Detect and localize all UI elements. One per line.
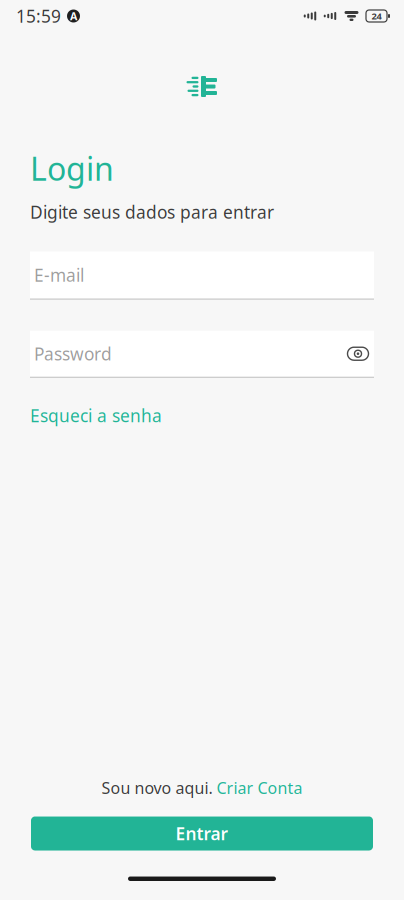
button[interactable]: Esqueci a senha — [0, 378, 404, 433]
staticText: Criar Conta — [216, 777, 302, 798]
button[interactable]: Show password — [346, 342, 370, 366]
staticText: Login — [30, 147, 114, 189]
staticText: 15:59 — [16, 4, 61, 27]
button[interactable]: Entrar — [31, 816, 373, 850]
staticText: Password — [34, 342, 112, 365]
button[interactable]: Criar Conta — [216, 777, 302, 798]
staticText: Sou novo aqui. — [101, 777, 212, 798]
staticText: Esqueci a senha — [30, 404, 162, 427]
staticText: E-mail — [34, 263, 84, 286]
staticText: 24 — [371, 10, 381, 22]
staticText: A — [70, 9, 77, 23]
staticText: Digite seus dados para entrar — [30, 200, 274, 223]
staticText: Entrar — [175, 822, 228, 845]
